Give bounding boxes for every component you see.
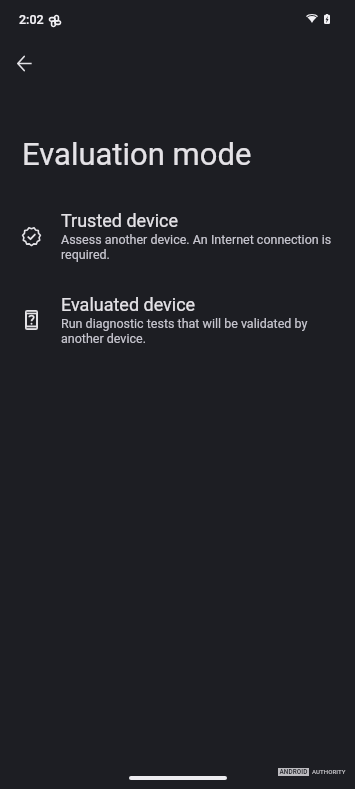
staticText: Trusted device <box>61 210 179 232</box>
staticText: 2:02 <box>19 10 44 28</box>
button[interactable]: Evaluated device <box>0 278 355 362</box>
staticText: Evaluation mode <box>22 133 252 173</box>
staticText: Evaluated device <box>61 294 196 316</box>
staticText: ANDROID <box>279 768 308 776</box>
staticText: Assess another device. An Internet conne… <box>61 232 332 262</box>
button[interactable]: Trusted device <box>0 194 355 278</box>
button[interactable]: Navigate up <box>4 43 44 83</box>
staticText: Run diagnostic tests that will be valida… <box>61 316 308 346</box>
staticText: AUTHORITY <box>312 768 346 776</box>
